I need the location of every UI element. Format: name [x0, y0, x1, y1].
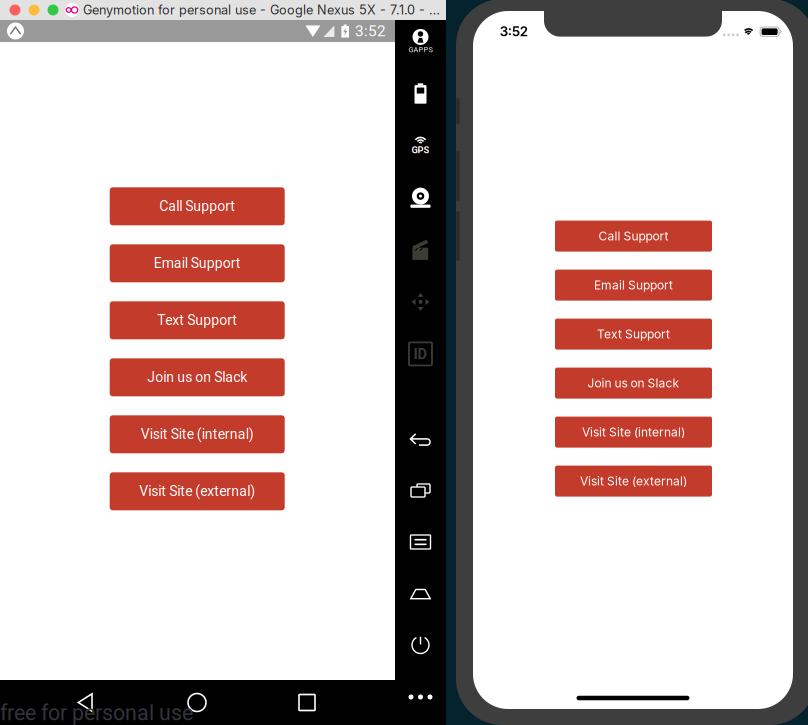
- button[interactable]: Home: [188, 693, 206, 711]
- button[interactable]: Text Support: [555, 319, 712, 350]
- staticText: Visit Site (external): [580, 474, 687, 488]
- staticText: Visit Site (internal): [141, 426, 254, 442]
- staticText: 3:52: [500, 23, 528, 39]
- staticText: Call Support: [598, 229, 668, 243]
- staticText: GPS: [411, 145, 429, 155]
- button[interactable]: Back: [395, 416, 446, 462]
- button[interactable]: Visit Site (internal): [555, 417, 712, 448]
- button[interactable]: Minimise: [28, 4, 39, 15]
- button[interactable]: Join us on Slack: [110, 358, 285, 396]
- button[interactable]: Back: [77, 692, 97, 712]
- button[interactable]: GPS: [395, 123, 446, 169]
- button[interactable]: More options: [395, 674, 446, 720]
- staticText: Email Support: [594, 278, 673, 292]
- button[interactable]: Recent apps: [395, 467, 446, 513]
- staticText: Text Support: [597, 327, 670, 341]
- button[interactable]: Keyboard: [395, 519, 446, 565]
- button[interactable]: Close: [9, 4, 20, 15]
- button[interactable]: Zoom: [47, 4, 58, 15]
- button[interactable]: Rotation: [395, 279, 446, 325]
- staticText: 3:52: [355, 22, 386, 40]
- button[interactable]: Visit Site (internal): [110, 415, 285, 453]
- button[interactable]: Visit Site (external): [110, 472, 285, 510]
- button[interactable]: Email Support: [110, 244, 285, 282]
- button[interactable]: Identifiers: [395, 331, 446, 377]
- staticText: Text Support: [157, 312, 237, 328]
- button[interactable]: Call Support: [110, 187, 285, 225]
- button[interactable]: Camera: [395, 175, 446, 221]
- button[interactable]: Screen recorder: [395, 227, 446, 273]
- button[interactable]: Battery: [395, 70, 446, 116]
- button[interactable]: Google Apps: [395, 18, 446, 64]
- button[interactable]: Email Support: [555, 270, 712, 301]
- button[interactable]: Recent apps: [299, 694, 315, 710]
- button[interactable]: Power: [395, 622, 446, 668]
- button[interactable]: Call Support: [555, 221, 712, 252]
- staticText: Genymotion for personal use - Google Nex…: [83, 2, 446, 18]
- staticText: GAPPS: [408, 45, 432, 54]
- button[interactable]: Text Support: [110, 301, 285, 339]
- button[interactable]: Visit Site (external): [555, 466, 712, 497]
- button[interactable]: Join us on Slack: [555, 368, 712, 399]
- staticText: Join us on Slack: [147, 369, 247, 385]
- staticText: free for personal use: [0, 700, 193, 725]
- staticText: Visit Site (external): [139, 483, 255, 499]
- button[interactable]: Home: [395, 571, 446, 617]
- staticText: Call Support: [159, 198, 235, 214]
- staticText: Join us on Slack: [587, 376, 679, 390]
- staticText: ID: [413, 345, 427, 362]
- staticText: Visit Site (internal): [582, 425, 685, 439]
- staticText: Email Support: [154, 255, 241, 271]
